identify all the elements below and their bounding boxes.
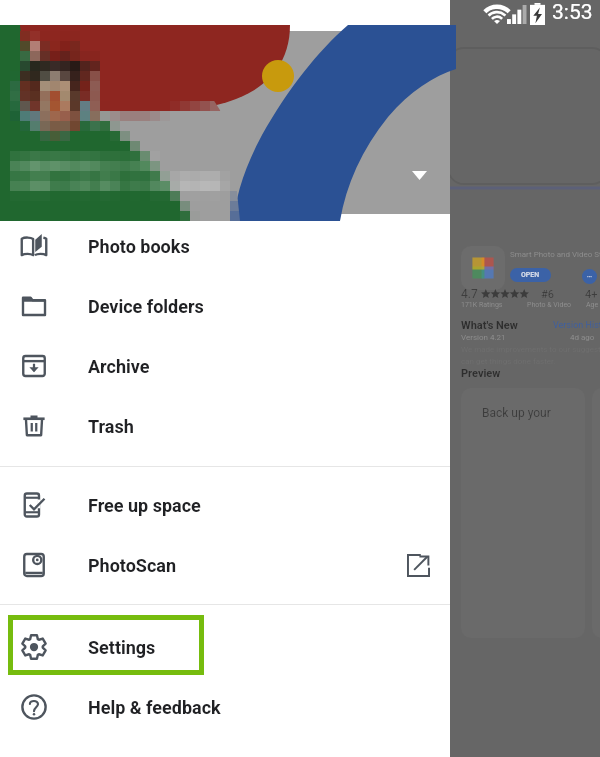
staticText: Device folders bbox=[88, 296, 204, 317]
staticText: 4.7 bbox=[461, 287, 478, 301]
button[interactable]: Free up space bbox=[0, 475, 450, 535]
staticText: Trash bbox=[88, 416, 134, 437]
staticText: 171K Ratings bbox=[461, 301, 503, 309]
staticText: Photo books bbox=[88, 236, 190, 257]
staticText: OPEN bbox=[521, 271, 540, 279]
button[interactable]: Settings bbox=[0, 617, 450, 677]
button[interactable]: Device folders bbox=[0, 276, 450, 336]
button[interactable]: Archive bbox=[0, 336, 450, 396]
button[interactable]: Trash bbox=[0, 396, 450, 456]
button[interactable]: Switch account bbox=[401, 157, 437, 193]
staticText: 4d ago bbox=[570, 333, 595, 342]
staticText: Settings bbox=[88, 637, 156, 658]
staticText: Back up your bbox=[482, 406, 551, 420]
staticText: PhotoScan bbox=[88, 555, 177, 576]
staticText: #6 bbox=[541, 288, 554, 301]
staticText: ••• bbox=[587, 274, 593, 280]
staticText: Free up space bbox=[88, 495, 201, 516]
staticText: Archive bbox=[88, 356, 150, 377]
button[interactable]: Open PhotoScan bbox=[400, 547, 436, 583]
staticText: Photo & Video bbox=[527, 301, 572, 309]
staticText: Help & feedback bbox=[88, 697, 221, 718]
button[interactable]: Help & feedback bbox=[0, 677, 450, 737]
staticText: Preview bbox=[461, 367, 501, 380]
button[interactable]: Photo books bbox=[0, 216, 450, 276]
staticText: What's New bbox=[461, 319, 518, 332]
staticText: 4+ bbox=[585, 288, 598, 301]
button[interactable]: Switch account bbox=[0, 31, 450, 214]
staticText: Smart Photo and Video Storage bbox=[510, 250, 600, 259]
staticText: Version 4.21 bbox=[461, 333, 506, 342]
button[interactable]: PhotoScan bbox=[0, 535, 450, 595]
staticText: Age bbox=[586, 301, 599, 309]
staticText: 3:53 bbox=[552, 0, 593, 25]
staticText: Version History bbox=[553, 320, 600, 331]
